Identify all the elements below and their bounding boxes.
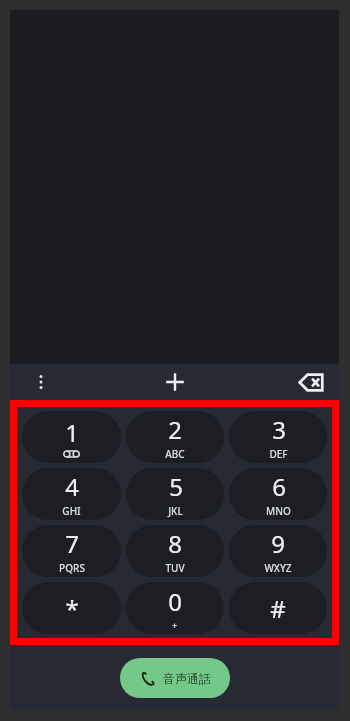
staticText: PQRS (59, 561, 85, 575)
staticText: DEF (269, 447, 288, 461)
button[interactable]: Backspace (293, 364, 329, 400)
button[interactable]: # (229, 582, 327, 634)
button[interactable]: 2 (126, 411, 224, 463)
button[interactable]: Add (157, 364, 193, 400)
staticText: 7 (65, 527, 79, 560)
button[interactable]: 5 (126, 468, 224, 520)
button[interactable]: 4 (22, 468, 121, 520)
button[interactable]: 9 (229, 525, 327, 577)
staticText: 1 (65, 416, 79, 449)
staticText: 6 (272, 470, 286, 503)
staticText: 0 (168, 585, 182, 618)
button[interactable]: 3 (229, 411, 327, 463)
button[interactable]: 音声通話 (120, 658, 230, 698)
staticText: WXYZ (264, 561, 292, 575)
button[interactable]: 0 (126, 582, 224, 634)
button[interactable]: * (22, 582, 121, 634)
button[interactable]: 8 (126, 525, 224, 577)
button[interactable]: 7 (22, 525, 121, 577)
staticText: # (270, 592, 286, 625)
staticText: 9 (271, 527, 285, 560)
staticText: 5 (169, 470, 183, 503)
staticText: 4 (65, 470, 79, 503)
staticText: + (172, 619, 178, 631)
staticText: 8 (168, 527, 182, 560)
button[interactable]: 1 (22, 411, 121, 463)
button[interactable]: 6 (229, 468, 327, 520)
staticText: 音声通話 (163, 671, 211, 686)
staticText: ABC (165, 447, 185, 461)
staticText: TUV (165, 561, 185, 575)
staticText: GHI (62, 504, 81, 518)
button[interactable]: More options (26, 367, 56, 397)
staticText: 3 (272, 413, 286, 446)
staticText: 2 (168, 413, 182, 446)
staticText: MNO (266, 504, 291, 518)
staticText: JKL (168, 504, 183, 518)
staticText: * (65, 592, 79, 625)
